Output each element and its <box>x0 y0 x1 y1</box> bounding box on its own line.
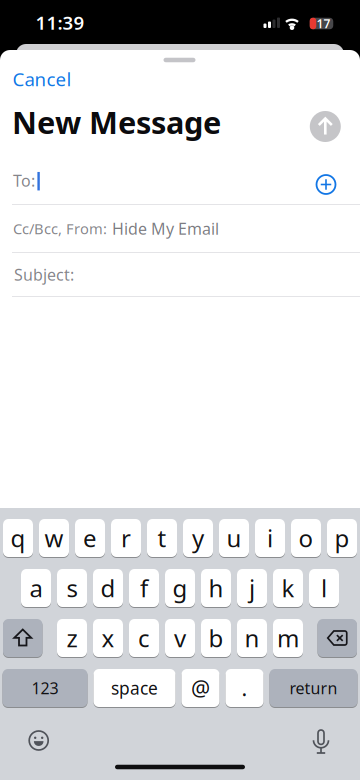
button[interactable]: q <box>3 518 33 557</box>
button[interactable]: v <box>165 618 195 657</box>
staticText: c <box>138 622 150 654</box>
button[interactable]: b <box>201 618 231 657</box>
staticText: h <box>208 572 223 604</box>
staticText: 123 <box>31 677 58 699</box>
staticText: t <box>157 522 166 554</box>
staticText: x <box>101 622 114 654</box>
staticText: Cancel <box>12 67 71 91</box>
staticText: j <box>249 572 255 604</box>
staticText: b <box>208 622 223 654</box>
button[interactable]: t <box>147 518 177 557</box>
button[interactable]: o <box>291 518 321 557</box>
button[interactable]: Emoji <box>29 730 49 750</box>
staticText: n <box>244 622 259 654</box>
staticText: m <box>277 622 299 654</box>
staticText: @ <box>191 674 210 702</box>
button[interactable]: w <box>39 518 69 557</box>
button[interactable]: p <box>327 518 357 557</box>
button[interactable]: c <box>129 618 159 657</box>
button[interactable]: . <box>225 668 263 707</box>
staticText: i <box>267 522 273 554</box>
button[interactable]: h <box>201 568 231 607</box>
staticText: New Message <box>12 102 221 142</box>
button[interactable]: i <box>255 518 285 557</box>
staticText: d <box>100 572 115 604</box>
staticText: f <box>140 572 148 604</box>
button[interactable]: Add Contact <box>315 173 337 195</box>
staticText: w <box>44 522 63 554</box>
button[interactable]: Subject: <box>0 252 360 296</box>
staticText: l <box>321 572 327 604</box>
staticText: q <box>10 522 25 554</box>
staticText: Subject: <box>14 264 74 285</box>
staticText: g <box>172 572 187 604</box>
button[interactable]: s <box>57 568 87 607</box>
button[interactable]: e <box>75 518 105 557</box>
button[interactable]: m <box>273 618 303 657</box>
button[interactable]: u <box>219 518 249 557</box>
button[interactable]: k <box>273 568 303 607</box>
staticText: u <box>226 522 241 554</box>
button[interactable]: f <box>129 568 159 607</box>
button[interactable]: r <box>111 518 141 557</box>
button[interactable]: Cancel <box>12 68 92 90</box>
button[interactable]: Cc/Bcc, From: <box>0 204 360 252</box>
staticText: e <box>83 522 97 554</box>
button[interactable]: x <box>93 618 123 657</box>
staticText: Cc/Bcc, From: <box>13 219 107 238</box>
button[interactable]: To: <box>0 156 300 204</box>
button[interactable]: Send <box>310 111 341 142</box>
staticText: 17 <box>316 15 330 31</box>
staticText: y <box>192 522 204 554</box>
button[interactable]: 123 <box>2 668 87 707</box>
button[interactable]: space <box>93 668 175 707</box>
staticText: r <box>121 522 131 554</box>
button[interactable]: d <box>93 568 123 607</box>
button[interactable]: Shift <box>3 618 42 657</box>
staticText: v <box>174 622 186 654</box>
staticText: z <box>66 622 77 654</box>
staticText: To: <box>13 170 35 191</box>
staticText: return <box>289 677 337 699</box>
staticText: 11:39 <box>35 10 84 35</box>
button[interactable]: @ <box>181 668 219 707</box>
staticText: k <box>281 572 294 604</box>
staticText: o <box>298 522 313 554</box>
button[interactable]: return <box>269 668 357 707</box>
staticText: a <box>29 572 42 604</box>
button[interactable]: n <box>237 618 267 657</box>
button[interactable]: y <box>183 518 213 557</box>
button[interactable]: l <box>309 568 339 607</box>
button[interactable]: j <box>237 568 267 607</box>
staticText: . <box>241 674 247 702</box>
button[interactable]: g <box>165 568 195 607</box>
button[interactable]: Delete <box>317 618 357 657</box>
button[interactable]: a <box>21 568 51 607</box>
staticText: p <box>334 522 349 554</box>
button[interactable]: Dictation <box>311 729 331 755</box>
staticText: space <box>111 676 158 699</box>
staticText: s <box>66 572 77 604</box>
button[interactable]: z <box>57 618 87 657</box>
staticText: Hide My Email <box>112 218 219 239</box>
